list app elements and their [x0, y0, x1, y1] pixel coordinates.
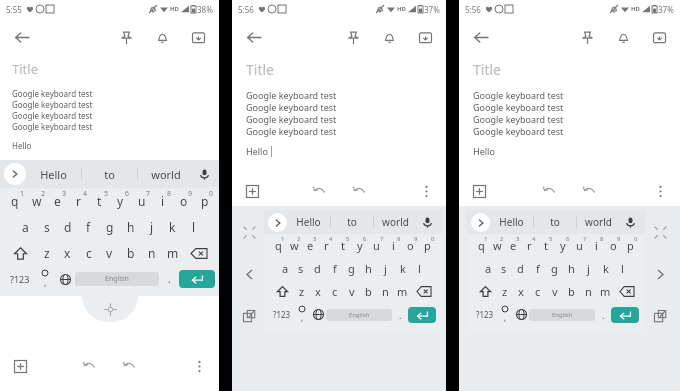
button[interactable]: d [512, 257, 529, 280]
button[interactable]: c [529, 280, 546, 303]
button[interactable]: 6 [351, 234, 368, 257]
button[interactable]: k [597, 257, 614, 280]
button[interactable]: 8 [588, 234, 605, 257]
button[interactable]: n [580, 280, 597, 303]
button[interactable]: More options [414, 179, 438, 203]
button[interactable]: Switch language [513, 303, 529, 326]
button[interactable]: Pin [574, 24, 600, 50]
button[interactable]: z [497, 280, 513, 303]
button[interactable]: f [78, 214, 99, 240]
button[interactable]: Backspace [614, 280, 639, 303]
button[interactable]: 7 [368, 234, 385, 257]
button[interactable]: 7 [131, 188, 152, 214]
button[interactable]: 7 [571, 234, 588, 257]
button[interactable]: ?123 [473, 303, 497, 326]
button[interactable]: ?123 [4, 266, 35, 292]
button[interactable]: 3 [302, 234, 318, 257]
button[interactable]: 8 [152, 188, 173, 214]
button[interactable]: Backspace [183, 240, 215, 266]
button[interactable]: 1 [4, 188, 26, 214]
button[interactable]: Redo [577, 179, 601, 203]
button[interactable]: Emoji [294, 303, 310, 326]
button[interactable]: m [162, 240, 183, 266]
button[interactable]: k [162, 214, 183, 240]
button[interactable]: c [326, 280, 343, 303]
button[interactable]: v [99, 240, 120, 266]
button[interactable]: 0 [419, 234, 436, 257]
button[interactable]: n [141, 240, 162, 266]
button[interactable]: to [534, 210, 576, 234]
button[interactable]: English [75, 272, 159, 286]
button[interactable]: m [597, 280, 614, 303]
button[interactable]: l [183, 214, 204, 240]
button[interactable]: f [326, 257, 343, 280]
button[interactable]: . [595, 303, 611, 326]
button[interactable]: Redo [347, 179, 371, 203]
button[interactable]: Voice input [619, 210, 641, 234]
button[interactable]: Redo [117, 354, 141, 378]
button[interactable]: l [614, 257, 631, 280]
button[interactable]: Archive [646, 24, 672, 50]
button[interactable]: ?123 [270, 303, 294, 326]
button[interactable]: 5 [89, 188, 110, 214]
button[interactable]: world [577, 210, 619, 234]
button[interactable]: v [546, 280, 563, 303]
button[interactable]: Detach keyboard [237, 304, 261, 328]
button[interactable]: s [293, 257, 309, 280]
button[interactable]: Voice input [193, 160, 215, 188]
button[interactable]: x [513, 280, 529, 303]
button[interactable]: 1 [473, 234, 489, 257]
button[interactable]: g [343, 257, 360, 280]
button[interactable]: c [78, 240, 99, 266]
button[interactable]: Undo [307, 179, 331, 203]
button[interactable]: Resize keyboard [237, 220, 261, 244]
button[interactable]: 1 [270, 234, 286, 257]
button[interactable]: Shift [270, 280, 294, 303]
button[interactable]: 6 [110, 188, 131, 214]
button[interactable]: n [377, 280, 394, 303]
button[interactable]: Add [8, 354, 32, 378]
button[interactable]: 4 [521, 234, 537, 257]
button[interactable]: Enter [408, 307, 436, 323]
button[interactable]: 2 [286, 234, 302, 257]
button[interactable]: Emoji [35, 266, 55, 292]
button[interactable]: Expand suggestions [4, 163, 26, 185]
button[interactable]: j [141, 214, 162, 240]
button[interactable]: 9 [402, 234, 419, 257]
button[interactable]: 4 [318, 234, 334, 257]
button[interactable]: Reminder [610, 24, 636, 50]
button[interactable]: s [36, 214, 57, 240]
button[interactable]: English [529, 309, 595, 321]
button[interactable]: world [138, 160, 193, 188]
button[interactable]: Add [467, 179, 491, 203]
button[interactable]: s [496, 257, 512, 280]
button[interactable]: Back [8, 24, 34, 50]
button[interactable]: Resize keyboard [648, 220, 672, 244]
button[interactable]: Back [467, 24, 493, 50]
button[interactable]: j [377, 257, 394, 280]
button[interactable]: Enter [179, 270, 215, 288]
button[interactable]: 6 [554, 234, 571, 257]
button[interactable]: 0 [622, 234, 639, 257]
button[interactable]: g [546, 257, 563, 280]
button[interactable]: d [57, 214, 78, 240]
button[interactable]: a [480, 257, 496, 280]
button[interactable]: Pin [340, 24, 366, 50]
button[interactable]: world [374, 210, 416, 234]
button[interactable]: z [36, 240, 57, 266]
button[interactable]: z [294, 280, 310, 303]
button[interactable]: b [360, 280, 377, 303]
button[interactable]: a [277, 257, 293, 280]
button[interactable]: Expand suggestions [471, 213, 490, 232]
button[interactable]: a [15, 214, 36, 240]
button[interactable]: Move right [648, 262, 672, 286]
button[interactable]: d [309, 257, 326, 280]
button[interactable]: l [411, 257, 428, 280]
button[interactable]: Hello [490, 210, 533, 234]
button[interactable]: Emoji [497, 303, 513, 326]
button[interactable]: English [326, 309, 392, 321]
button[interactable]: 5 [334, 234, 351, 257]
button[interactable]: 5 [537, 234, 554, 257]
button[interactable]: 8 [385, 234, 402, 257]
button[interactable]: 2 [26, 188, 47, 214]
